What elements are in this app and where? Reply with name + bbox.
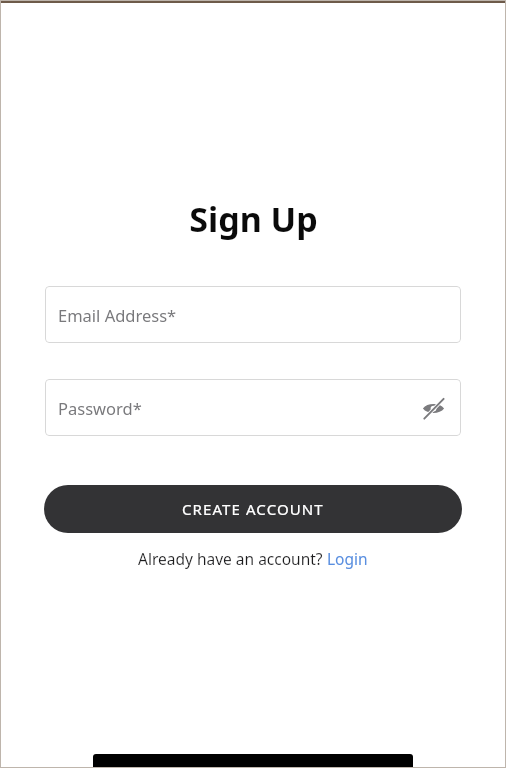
button[interactable]: Login xyxy=(327,548,368,569)
staticText: Password* xyxy=(58,397,142,419)
button[interactable]: CREATE ACCOUNT xyxy=(44,485,462,533)
staticText: CREATE ACCOUNT xyxy=(182,499,324,519)
staticText: Login xyxy=(327,548,368,569)
staticText: Already have an account? xyxy=(138,548,327,569)
staticText: Email Address* xyxy=(58,304,177,326)
button[interactable]: Toggle password visibility xyxy=(418,393,448,423)
button[interactable]: Email Address* xyxy=(45,286,461,343)
staticText: Sign Up xyxy=(189,196,318,242)
button[interactable]: Password* xyxy=(45,379,461,436)
